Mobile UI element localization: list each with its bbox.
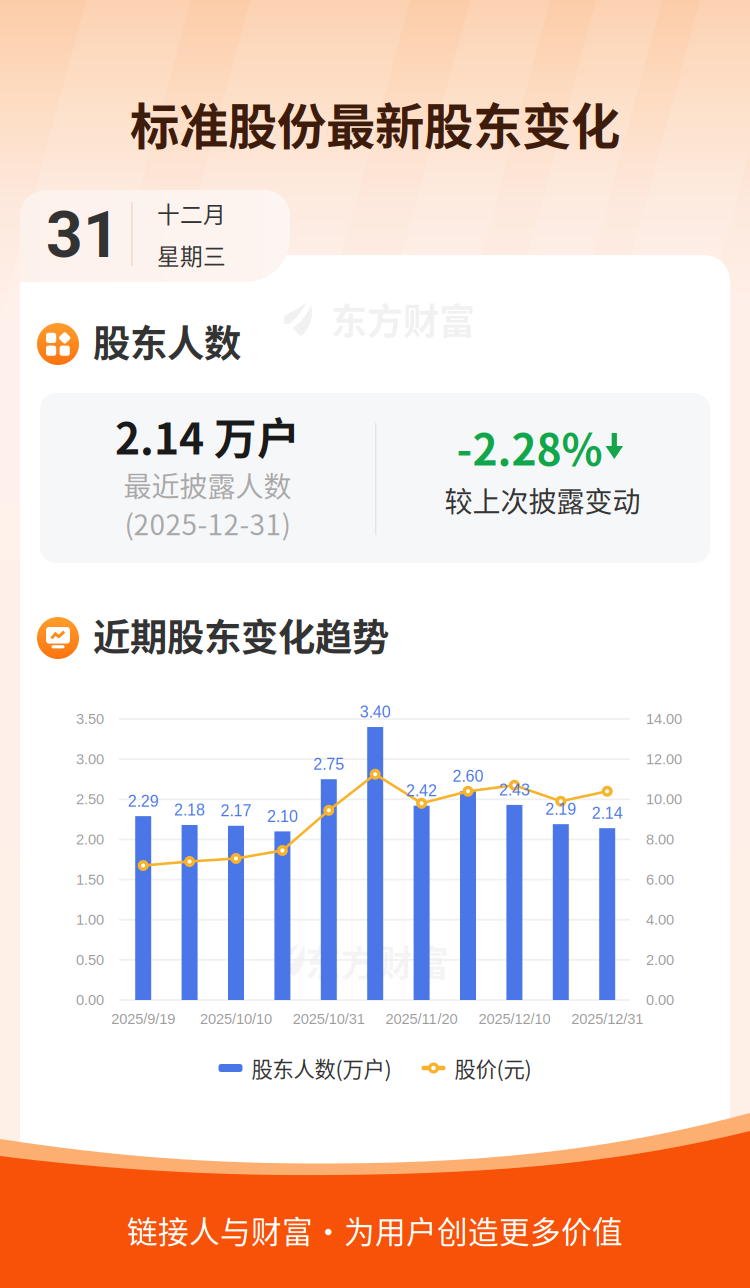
staticText: 2.18	[174, 801, 205, 819]
staticText: 2025/12/10	[478, 1011, 550, 1027]
staticText: 2.14 万户	[115, 405, 300, 467]
staticText: 3.00	[76, 751, 104, 767]
staticText: 3.50	[76, 711, 104, 727]
staticText: 2.60	[452, 767, 483, 785]
staticText: 0.00	[646, 992, 674, 1008]
staticText: 2.00	[76, 831, 104, 848]
staticText: 0.50	[76, 952, 104, 968]
staticText: 股价(元)	[454, 1053, 531, 1083]
staticText: 2025/11/20	[386, 1011, 458, 1027]
staticText: 2.00	[646, 952, 674, 968]
staticText: 2025/10/31	[293, 1011, 365, 1027]
staticText: 12.00	[646, 751, 682, 767]
staticText: 31	[46, 197, 120, 272]
staticText: 较上次披露变动	[444, 480, 640, 520]
staticText: 股东人数(万户)	[251, 1053, 391, 1083]
staticText: 0.00	[76, 992, 104, 1008]
staticText: 1.50	[76, 871, 104, 888]
staticText: 2.10	[267, 807, 298, 825]
staticText: 2025/9/19	[111, 1011, 175, 1027]
staticText: 东方财富	[305, 935, 449, 987]
staticText: 3.40	[360, 703, 391, 721]
staticText: (2025-12-31)	[124, 503, 290, 543]
staticText: 2025/12/31	[571, 1011, 643, 1027]
staticText: 近期股东变化趋势	[93, 608, 389, 662]
staticText: 2.43	[499, 781, 530, 799]
staticText: 股东人数	[93, 314, 241, 368]
staticText: 4.00	[646, 911, 674, 928]
staticText: 10.00	[646, 791, 682, 807]
staticText: 2025/10/10	[200, 1011, 272, 1027]
staticText: 十二月	[157, 197, 226, 229]
staticText: 8.00	[646, 831, 674, 848]
staticText: 2.14	[592, 804, 623, 822]
staticText: 14.00	[646, 711, 682, 727]
staticText: -2.28%	[456, 416, 602, 478]
staticText: 2.29	[128, 792, 159, 810]
staticText: 星期三	[157, 238, 226, 271]
staticText: 2.19	[545, 800, 576, 818]
staticText: 2.17	[220, 802, 251, 820]
staticText: 链接人与财富·为用户创造更多价值	[127, 1208, 623, 1252]
staticText: 标准股份最新股东变化	[130, 87, 620, 159]
staticText: 2.50	[76, 791, 104, 807]
staticText: 6.00	[646, 871, 674, 888]
staticText: 1.00	[76, 911, 104, 928]
staticText: 最近披露人数	[123, 465, 291, 505]
staticText: 东方财富	[331, 293, 475, 345]
staticText: 2.42	[406, 782, 437, 800]
staticText: 2.75	[313, 755, 344, 773]
